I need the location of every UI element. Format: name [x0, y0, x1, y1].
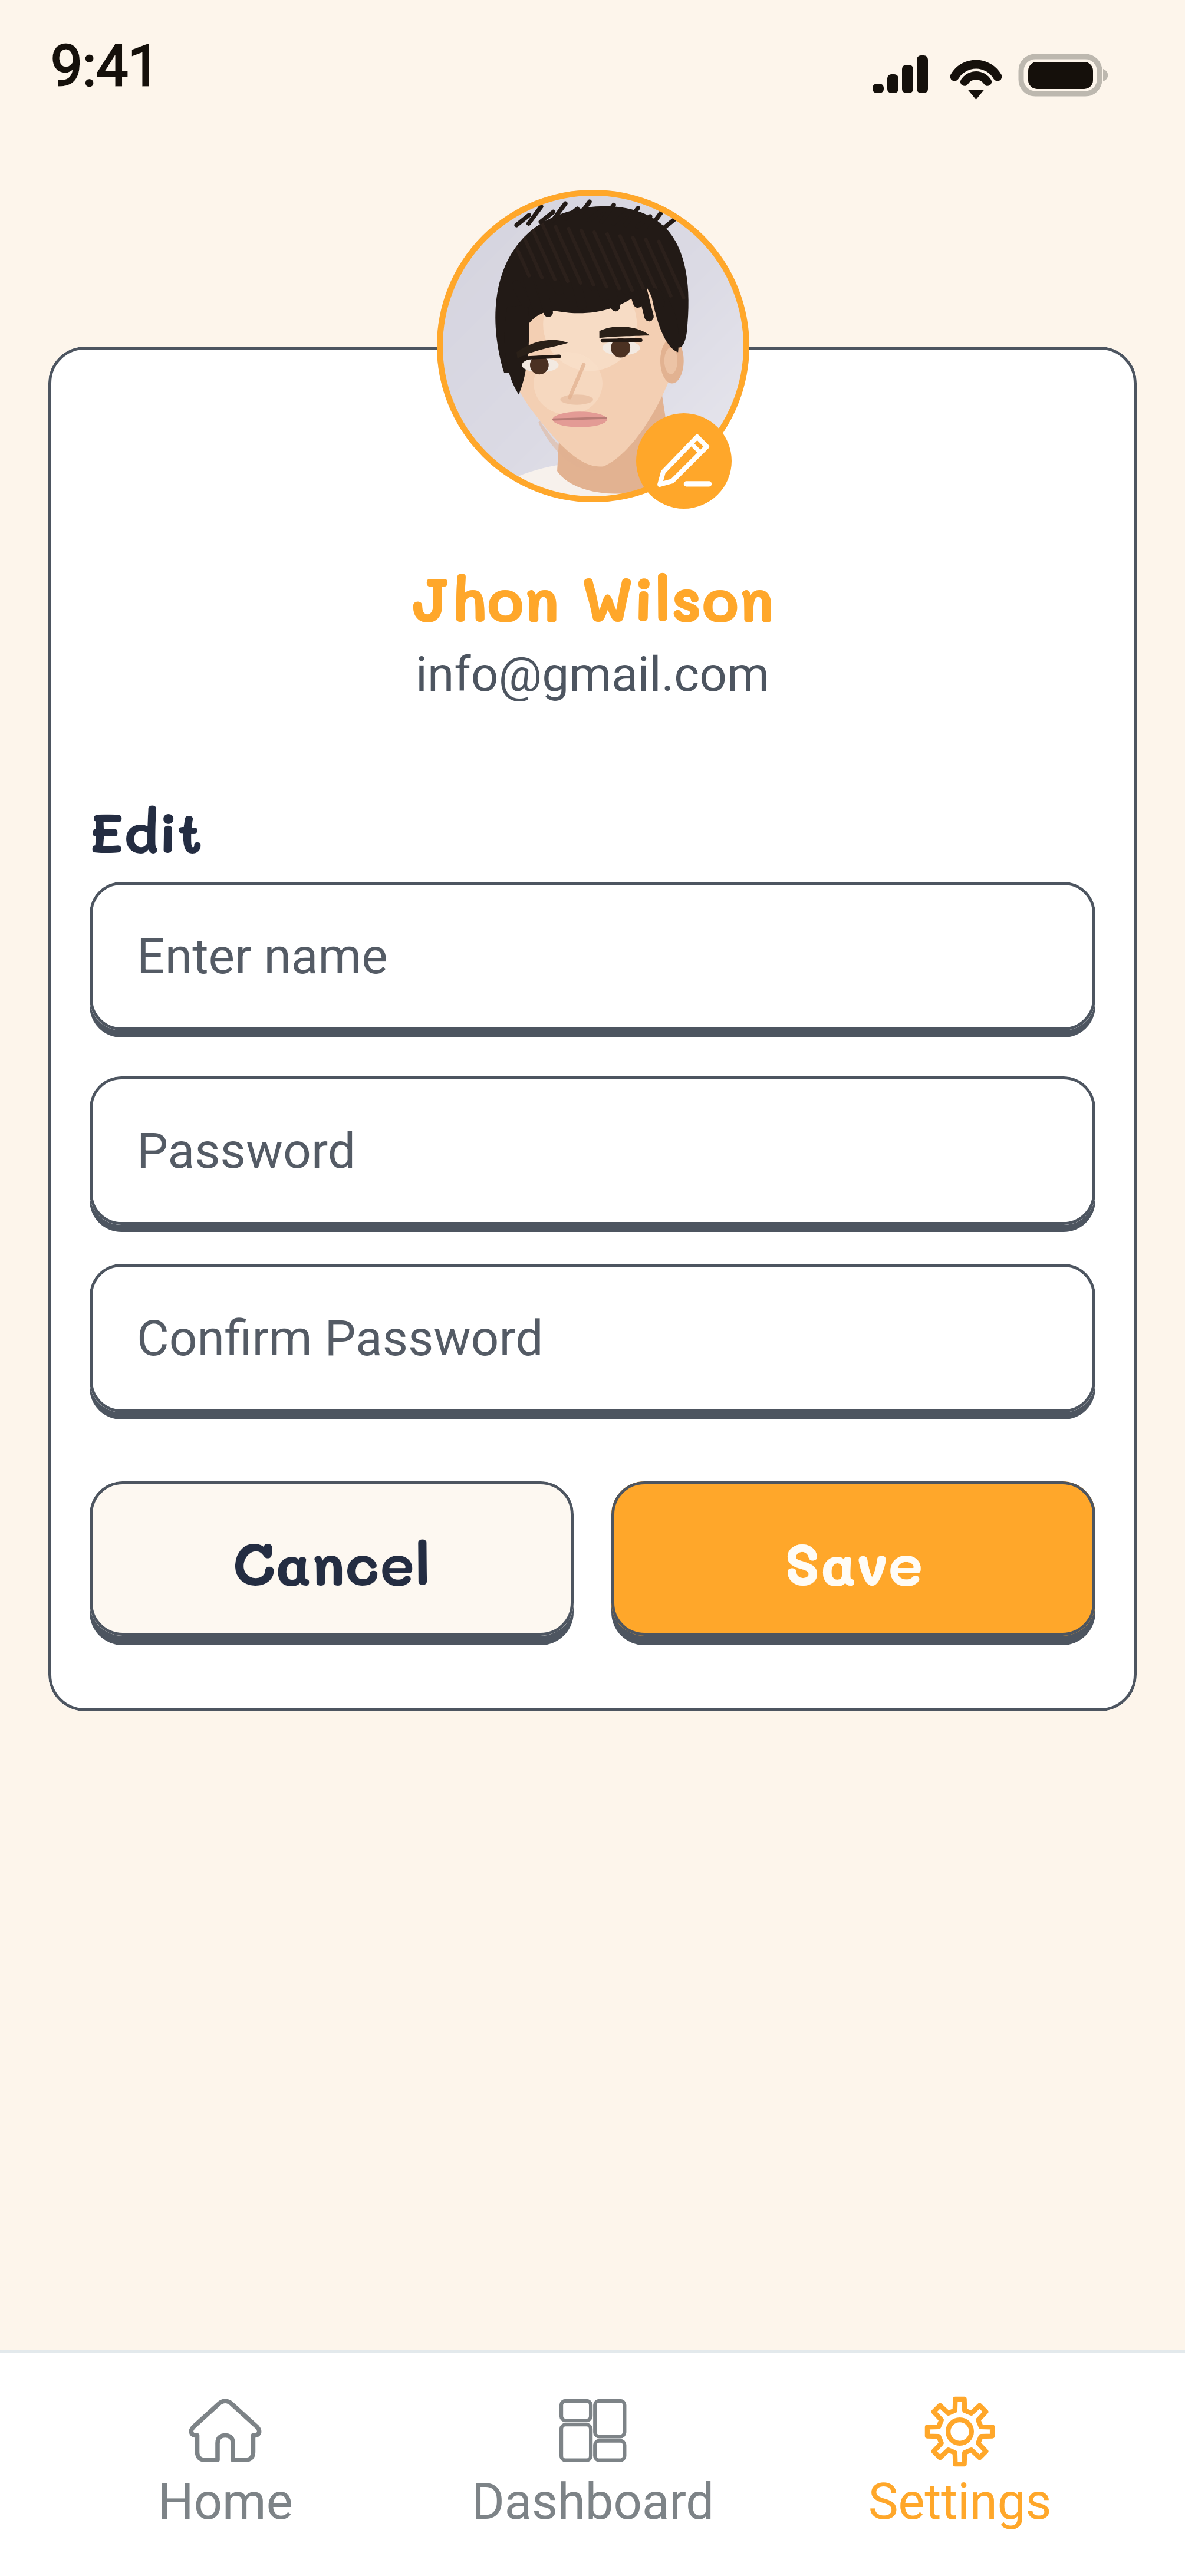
staticText: Home — [158, 2472, 293, 2531]
staticText: 9:41 — [51, 33, 160, 100]
staticText: Dashboard — [472, 2472, 715, 2531]
staticText: Enter name — [137, 927, 388, 985]
button[interactable]: Password — [90, 1076, 1095, 1232]
staticText: Jhon Wilson — [48, 558, 1137, 637]
button[interactable]: Settings — [765, 2353, 1154, 2576]
staticText: Confirm Password — [137, 1309, 544, 1367]
button[interactable]: Save — [611, 1481, 1095, 1645]
button[interactable]: Cancel — [90, 1481, 574, 1645]
staticText: Save — [784, 1524, 923, 1600]
staticText: Cancel — [232, 1524, 431, 1600]
staticText: Settings — [868, 2472, 1052, 2531]
button[interactable]: Enter name — [90, 882, 1095, 1037]
button[interactable]: Edit profile picture — [636, 413, 732, 509]
button[interactable]: Home — [31, 2353, 420, 2576]
staticText: Edit — [88, 795, 203, 867]
button[interactable]: Dashboard — [399, 2353, 788, 2576]
staticText: info@gmail.com — [48, 646, 1137, 703]
button[interactable]: Confirm Password — [90, 1264, 1095, 1419]
staticText: Password — [137, 1122, 356, 1180]
